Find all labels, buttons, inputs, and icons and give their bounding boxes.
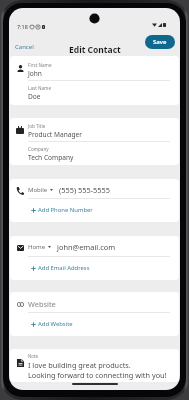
staticText: Doe [28,92,41,101]
staticText: John [28,69,42,78]
button[interactable]: Website [10,297,179,311]
staticText: Add Website [38,320,73,328]
button[interactable]: First Name [10,60,179,80]
staticText: Mobile [28,186,48,194]
button[interactable]: Add Phone Number [10,205,179,215]
button[interactable]: Add Website [10,319,179,329]
button[interactable]: Home [10,242,179,252]
button[interactable]: Mobile [10,185,179,195]
button[interactable]: Job Title [10,121,179,141]
staticText: Edit Contact [69,44,121,56]
staticText: Tech Company [28,153,74,162]
staticText: Job Title [28,123,46,129]
staticText: Note [28,353,39,359]
staticText: I love building great products. [28,360,131,370]
staticText: (555) 555-5555 [59,185,111,195]
staticText: Looking forward to connecting with you! [28,370,167,380]
button[interactable]: Save [145,35,175,49]
staticText: First Name [28,62,52,68]
button[interactable]: Last Name [10,83,179,103]
staticText: Add Email Address [38,264,90,272]
staticText: Cancel [15,43,34,51]
button[interactable]: Company [10,144,179,164]
button[interactable]: Cancel [12,40,37,54]
staticText: 7:18 [17,23,28,30]
staticText: Save [153,38,167,46]
staticText: Product Manager [28,130,82,139]
staticText: Last Name [28,85,51,91]
staticText: Website [28,299,56,309]
staticText: john@email.com [57,242,116,252]
staticText: Company [28,146,49,152]
staticText: Home [28,243,46,251]
staticText: Add Phone Number [38,206,93,214]
button[interactable]: Add Email Address [10,263,179,273]
